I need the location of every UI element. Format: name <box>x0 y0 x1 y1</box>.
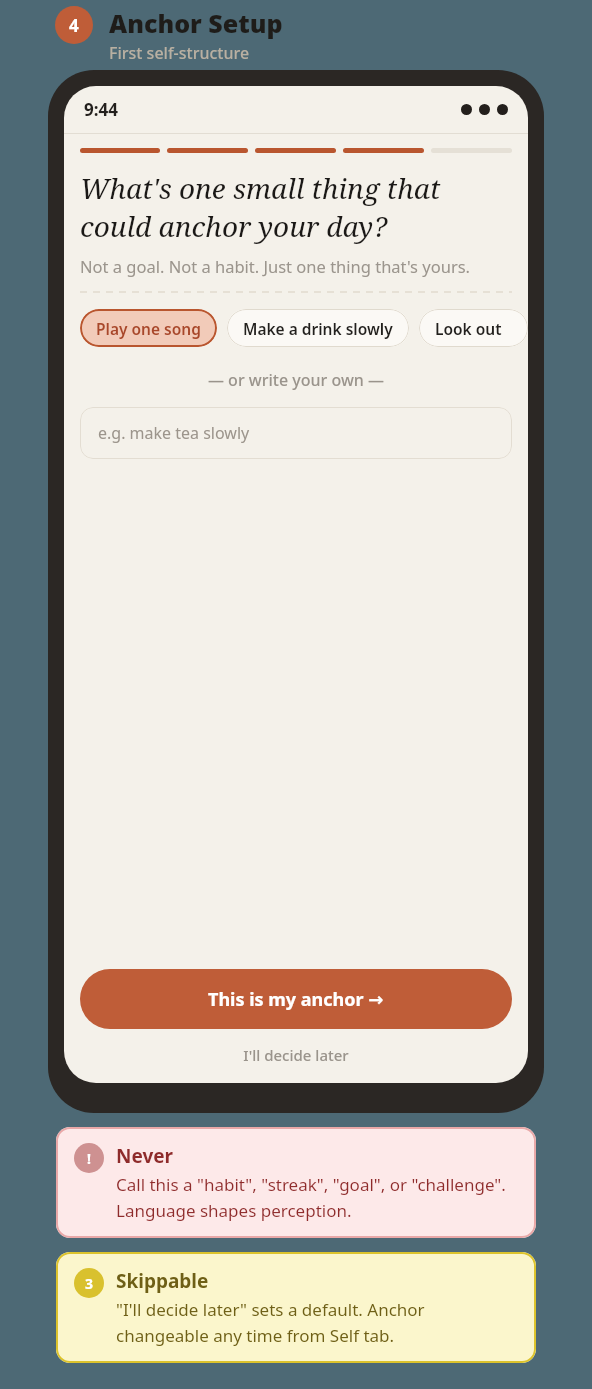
staticText: 3 <box>85 1274 94 1293</box>
staticText: Never <box>116 1143 174 1169</box>
staticText: e.g. make tea slowly <box>98 422 250 444</box>
staticText: Not a goal. Not a habit. Just one thing … <box>80 255 471 277</box>
staticText: Anchor Setup <box>109 6 283 40</box>
staticText: First self-structure <box>109 42 250 64</box>
staticText: ! <box>87 1149 91 1168</box>
button[interactable]: Look out the window <box>419 309 528 347</box>
button[interactable]: Play one song <box>80 309 217 347</box>
button[interactable]: I'll decide later <box>64 1045 528 1065</box>
staticText: What's one small thing that could anchor… <box>80 169 512 245</box>
staticText: "I'll decide later" sets a default. Anch… <box>116 1298 518 1347</box>
staticText: 9:44 <box>84 98 118 121</box>
button[interactable]: ! <box>56 1127 536 1238</box>
button[interactable]: e.g. make tea slowly <box>80 407 512 459</box>
staticText: Look out the window <box>435 318 512 339</box>
button[interactable]: Make a drink slowly <box>227 309 409 347</box>
staticText: Play one song <box>96 318 201 339</box>
staticText: — or write your own — <box>64 369 528 391</box>
staticText: Call this a "habit", "streak", "goal", o… <box>116 1173 518 1222</box>
staticText: Skippable <box>116 1268 209 1294</box>
button[interactable]: 3 <box>56 1252 536 1363</box>
staticText: This is my anchor → <box>208 987 384 1012</box>
button[interactable]: This is my anchor → <box>80 969 512 1029</box>
staticText: 4 <box>69 14 79 37</box>
staticText: Make a drink slowly <box>243 318 393 339</box>
